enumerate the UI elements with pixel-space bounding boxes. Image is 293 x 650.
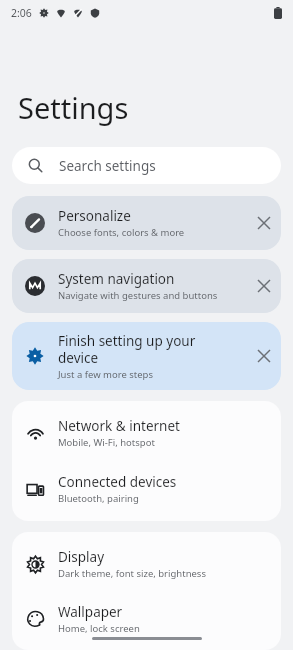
staticText: Wallpaper xyxy=(58,603,123,621)
button[interactable]: Connected devices xyxy=(12,461,281,517)
staticText: Finish setting up your device xyxy=(58,332,196,367)
staticText: Navigate with gestures and buttons xyxy=(58,289,218,302)
staticText: Dark theme, font size, brightness xyxy=(58,567,206,580)
button[interactable]: Wallpaper xyxy=(12,592,281,646)
staticText: Mobile, Wi-Fi, hotspot xyxy=(58,436,155,449)
staticText: 2:06 xyxy=(11,6,32,20)
staticText: Connected devices xyxy=(58,473,177,491)
button[interactable]: Search settings xyxy=(12,147,281,184)
button[interactable]: Dismiss xyxy=(247,322,281,390)
staticText: Network & internet xyxy=(58,417,180,435)
button[interactable]: System navigation xyxy=(12,259,281,313)
button[interactable]: Finish setting up your device xyxy=(12,322,281,390)
staticText: Settings xyxy=(18,88,129,127)
button[interactable]: Display xyxy=(12,536,281,592)
staticText: Choose fonts, colors & more xyxy=(58,226,185,239)
staticText: Search settings xyxy=(59,157,156,175)
button[interactable]: Dismiss xyxy=(247,259,281,313)
staticText: Personalize xyxy=(58,207,131,225)
staticText: Home, lock screen xyxy=(58,622,140,635)
button[interactable]: Personalize xyxy=(12,196,281,250)
staticText: System navigation xyxy=(58,270,175,288)
button[interactable]: Network & internet xyxy=(12,405,281,461)
button[interactable]: Dismiss xyxy=(247,196,281,250)
staticText: Just a few more steps xyxy=(58,368,154,381)
staticText: Display xyxy=(58,548,105,566)
staticText: Bluetooth, pairing xyxy=(58,492,139,505)
